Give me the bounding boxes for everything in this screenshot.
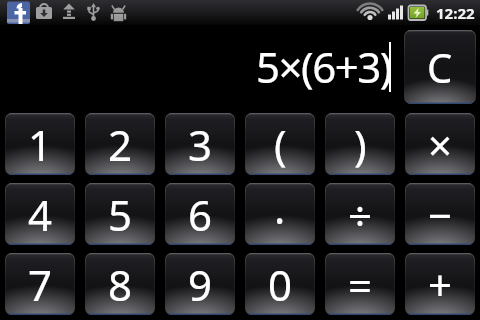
- staticText: 4: [28, 186, 53, 243]
- staticText: +: [428, 256, 453, 313]
- staticText: −: [428, 186, 453, 243]
- staticText: 12:22: [436, 3, 475, 23]
- staticText: ×: [428, 116, 453, 173]
- staticText: 5×(6+3): [256, 38, 391, 95]
- button[interactable]: C: [404, 30, 476, 104]
- staticText: 1: [28, 116, 53, 173]
- button[interactable]: 7: [5, 253, 75, 315]
- staticText: ): [354, 116, 367, 173]
- button[interactable]: 0: [245, 253, 315, 315]
- staticText: 9: [188, 256, 213, 313]
- button[interactable]: −: [405, 183, 475, 245]
- staticText: .: [274, 183, 286, 236]
- staticText: 0: [268, 256, 293, 313]
- button[interactable]: 2: [85, 113, 155, 175]
- staticText: 2: [108, 116, 133, 173]
- button[interactable]: +: [405, 253, 475, 315]
- staticText: (: [274, 116, 287, 173]
- staticText: 8: [108, 256, 133, 313]
- staticText: C: [427, 40, 453, 94]
- staticText: 5: [108, 186, 133, 243]
- button[interactable]: 3: [165, 113, 235, 175]
- button[interactable]: ×: [405, 113, 475, 175]
- button[interactable]: 5: [85, 183, 155, 245]
- button[interactable]: 4: [5, 183, 75, 245]
- button[interactable]: ÷: [325, 183, 395, 245]
- staticText: ÷: [348, 186, 373, 243]
- button[interactable]: 6: [165, 183, 235, 245]
- button[interactable]: 8: [85, 253, 155, 315]
- button[interactable]: (: [245, 113, 315, 175]
- button[interactable]: ): [325, 113, 395, 175]
- button[interactable]: 1: [5, 113, 75, 175]
- staticText: =: [348, 256, 373, 313]
- staticText: 7: [28, 256, 53, 313]
- button[interactable]: .: [245, 183, 315, 245]
- staticText: 3: [188, 116, 213, 173]
- button[interactable]: =: [325, 253, 395, 315]
- staticText: 6: [188, 186, 213, 243]
- button[interactable]: 9: [165, 253, 235, 315]
